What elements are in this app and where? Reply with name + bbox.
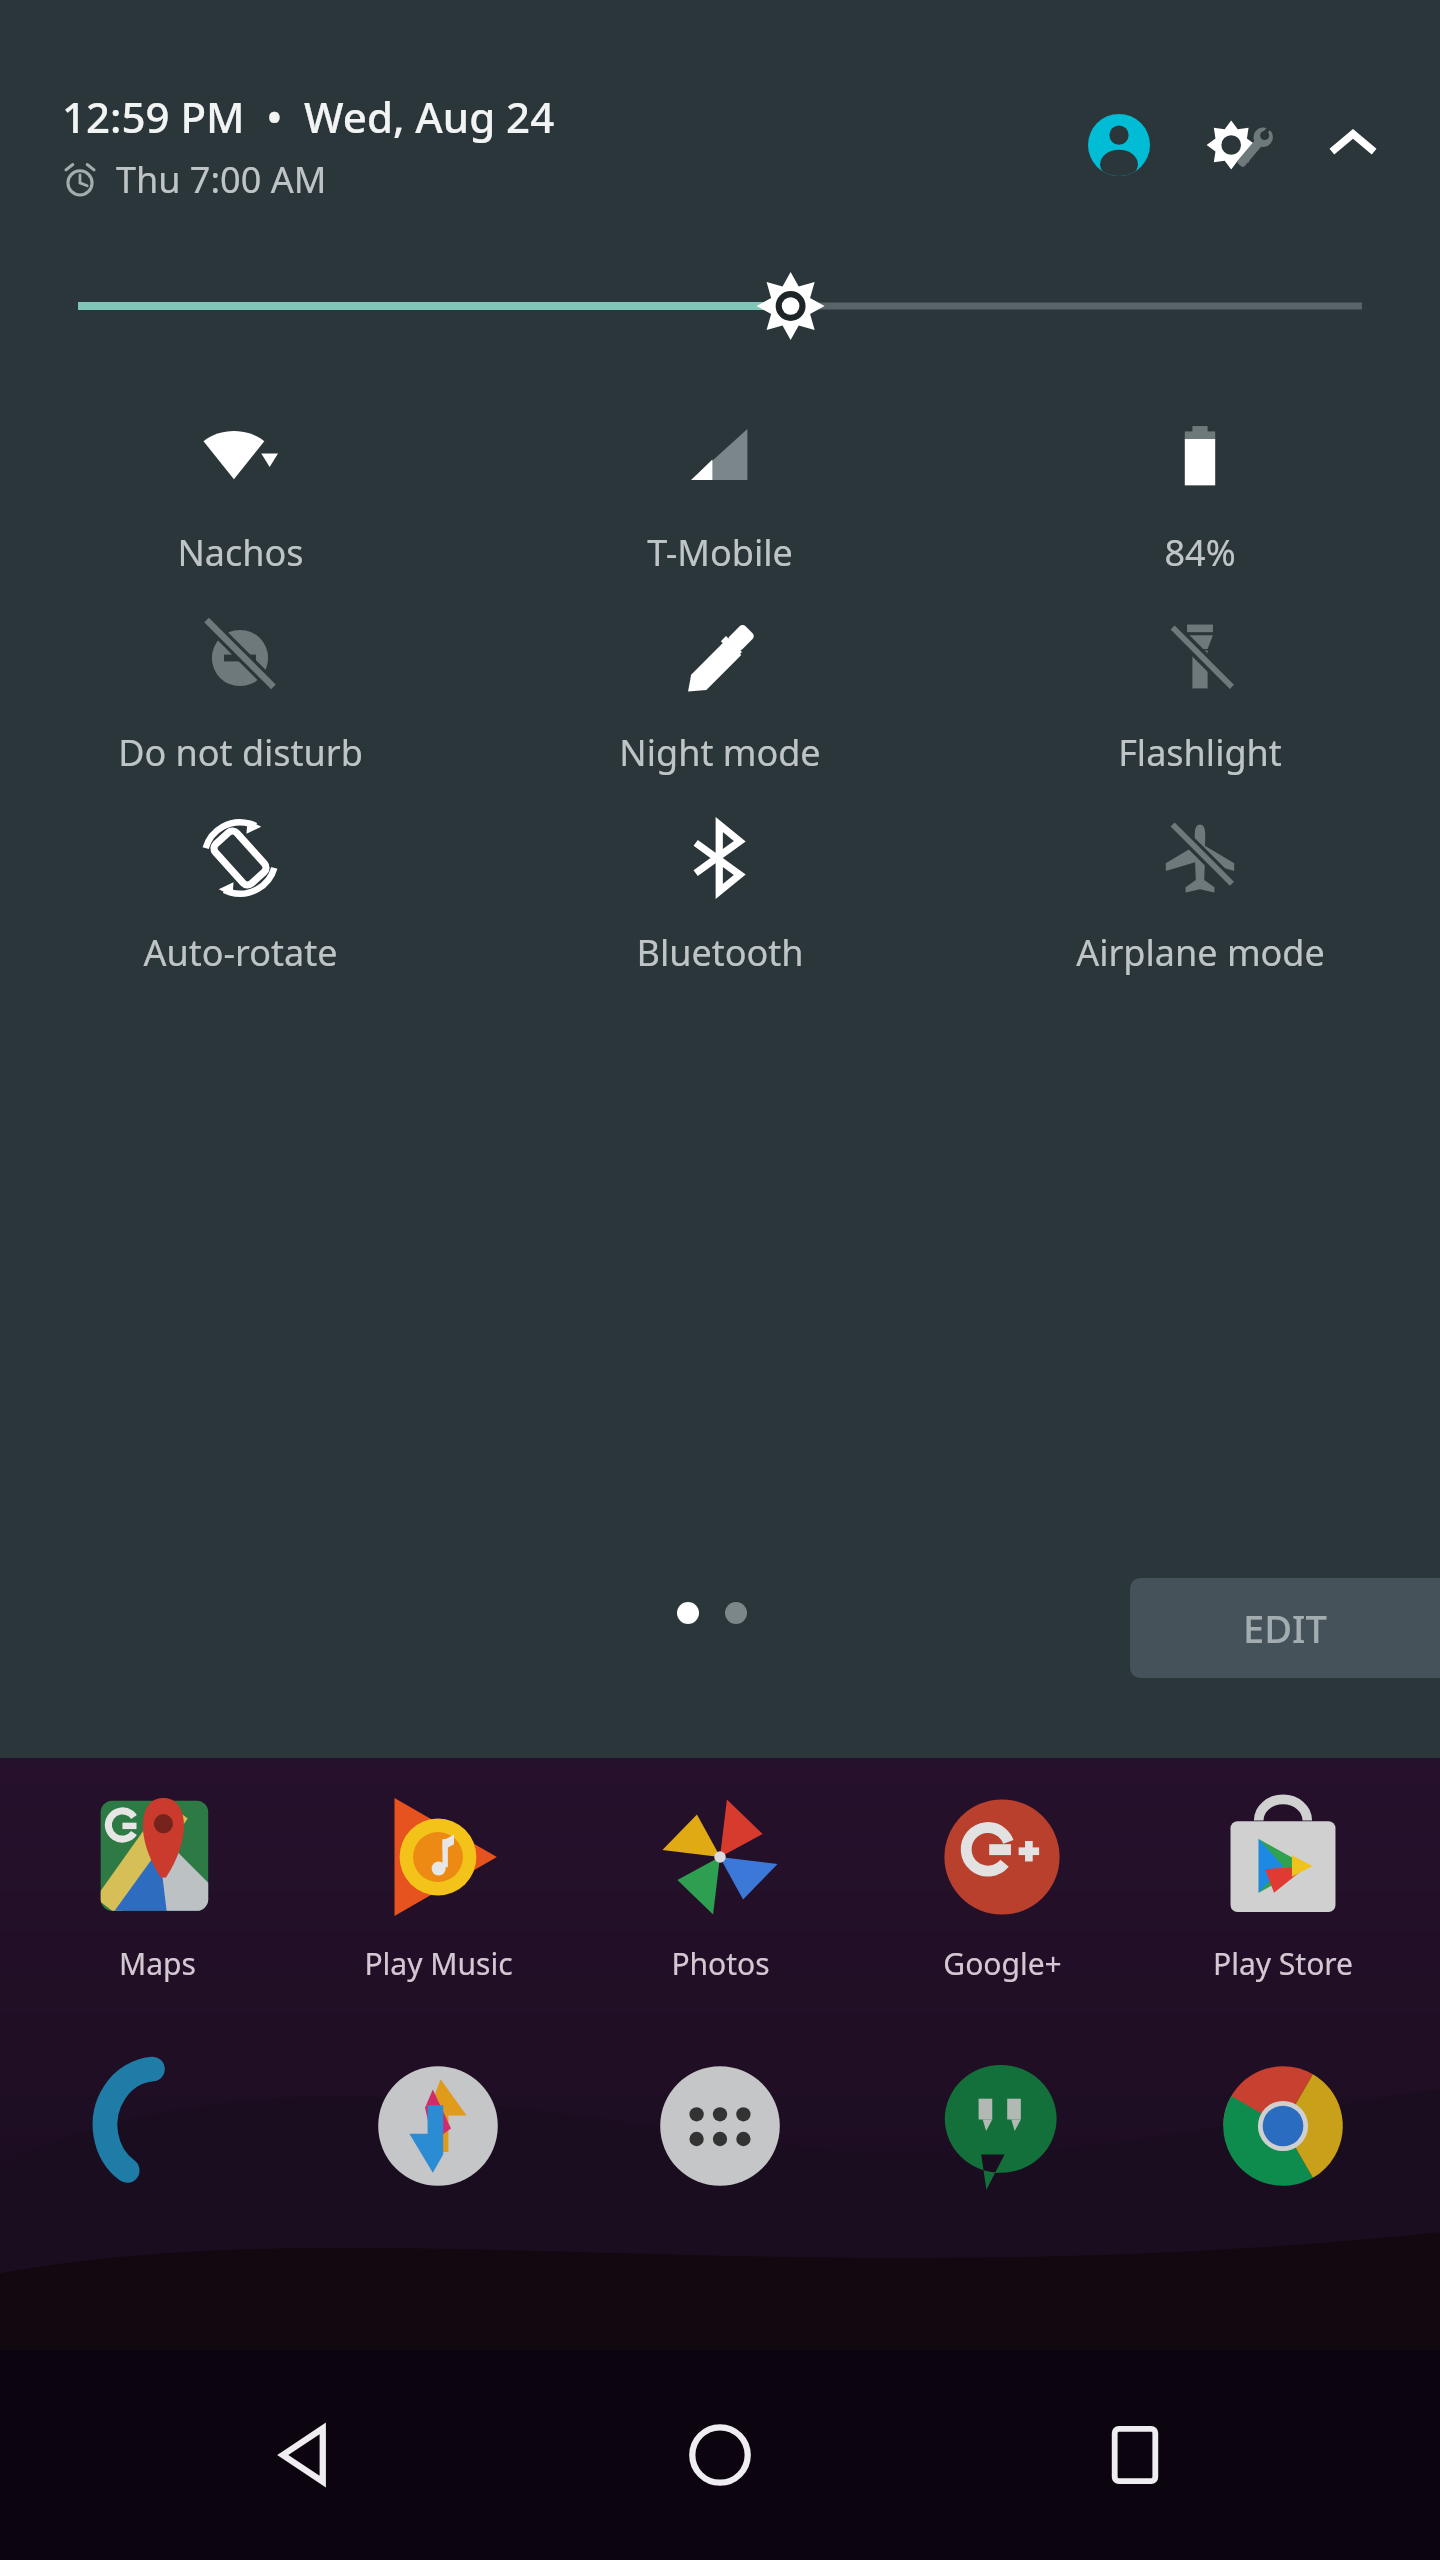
button[interactable]: drawer bbox=[595, 2046, 845, 2206]
button[interactable]: hangouts bbox=[877, 2046, 1127, 2206]
button[interactable]: T-Mobile bbox=[480, 408, 960, 608]
button[interactable]: Maps bbox=[32, 1775, 282, 1984]
button[interactable]: snap bbox=[313, 2046, 563, 2206]
staticText: Photos bbox=[671, 1943, 770, 1984]
button[interactable]: Collapse bbox=[1310, 102, 1396, 188]
button[interactable]: Google+ bbox=[877, 1775, 1127, 1984]
button[interactable]: Nachos bbox=[0, 408, 480, 608]
button[interactable] bbox=[0, 256, 1440, 356]
button[interactable]: Back bbox=[195, 2350, 415, 2560]
button[interactable]: Night mode bbox=[480, 608, 960, 808]
button[interactable]: Play Store bbox=[1158, 1775, 1408, 1984]
staticText: Auto-rotate bbox=[143, 928, 338, 977]
button[interactable]: Play Music bbox=[313, 1775, 563, 1984]
staticText: Night mode bbox=[619, 728, 821, 777]
staticText: Maps bbox=[119, 1943, 196, 1984]
staticText: T-Mobile bbox=[647, 528, 793, 577]
button[interactable]: Home bbox=[610, 2350, 830, 2560]
button[interactable]: Airplane mode bbox=[960, 808, 1440, 1008]
button[interactable]: Recents bbox=[1025, 2350, 1245, 2560]
button[interactable]: Auto-rotate bbox=[0, 808, 480, 1008]
staticText: 84% bbox=[1164, 528, 1236, 577]
button[interactable]: EDIT bbox=[1130, 1578, 1440, 1678]
staticText: Do not disturb bbox=[118, 728, 363, 777]
staticText: Flashlight bbox=[1118, 728, 1282, 777]
staticText: Google+ bbox=[943, 1943, 1062, 1984]
button[interactable]: 84% bbox=[960, 408, 1440, 608]
staticText: Play Music bbox=[364, 1943, 513, 1984]
button[interactable]: Flashlight bbox=[960, 608, 1440, 808]
staticText: Airplane mode bbox=[1076, 928, 1325, 977]
staticText: Nachos bbox=[177, 528, 304, 577]
staticText: EDIT bbox=[1243, 1602, 1327, 1654]
button[interactable]: Bluetooth bbox=[480, 808, 960, 1008]
button[interactable]: phone bbox=[32, 2046, 282, 2206]
button[interactable]: User account bbox=[1074, 100, 1164, 190]
button[interactable]: Do not disturb bbox=[0, 608, 480, 808]
staticText: 12:59 PM • Wed, Aug 24 bbox=[62, 88, 555, 145]
staticText: Bluetooth bbox=[636, 928, 804, 977]
button[interactable]: Photos bbox=[595, 1775, 845, 1984]
staticText: Play Store bbox=[1213, 1943, 1353, 1984]
staticText: Thu 7:00 AM bbox=[116, 155, 327, 204]
button[interactable]: chrome bbox=[1158, 2046, 1408, 2206]
button[interactable]: Settings bbox=[1190, 96, 1288, 194]
